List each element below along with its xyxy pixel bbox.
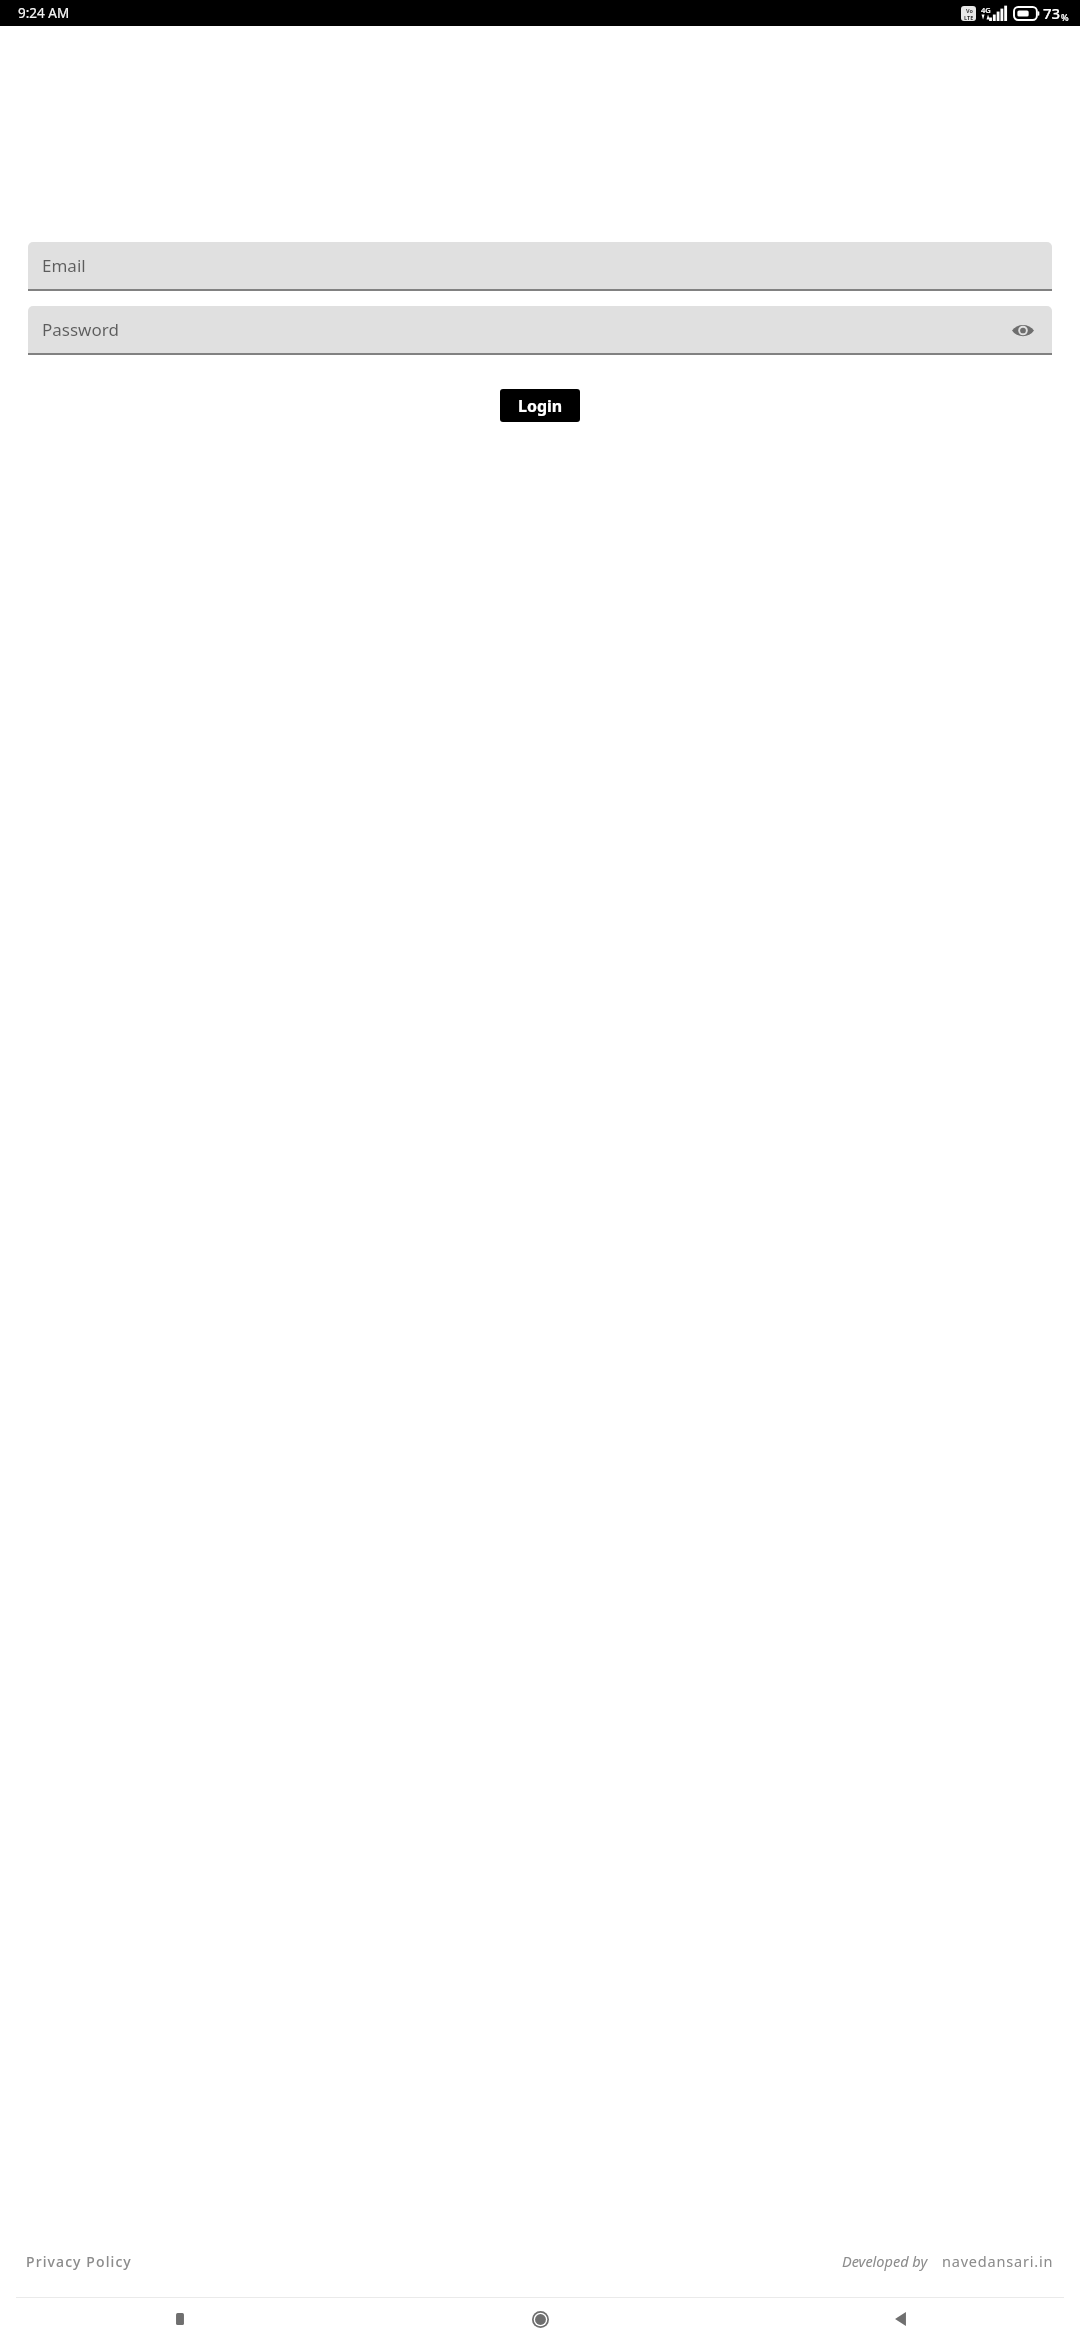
staticText: Password [42,318,119,341]
staticText: 4G [981,5,991,15]
staticText: Vo [966,7,973,14]
staticText: Email [42,254,86,277]
button[interactable]: navedansari.in [942,2251,1054,2271]
staticText: % [1061,11,1069,23]
staticText: LTE [964,14,974,21]
button[interactable]: Password [28,306,1052,355]
button[interactable]: Email [28,242,1052,291]
staticText: Login [518,395,563,417]
button[interactable]: Back [720,2298,1080,2340]
staticText: 73 [1043,3,1061,23]
button[interactable]: Privacy Policy [26,2252,132,2271]
staticText: 9:24 AM [18,4,70,22]
staticText: Developed by [842,2251,928,2271]
button[interactable]: Home [360,2298,720,2340]
button[interactable]: Login [500,389,580,422]
button[interactable]: Recents [0,2298,360,2340]
button[interactable]: Show password [1006,313,1040,347]
